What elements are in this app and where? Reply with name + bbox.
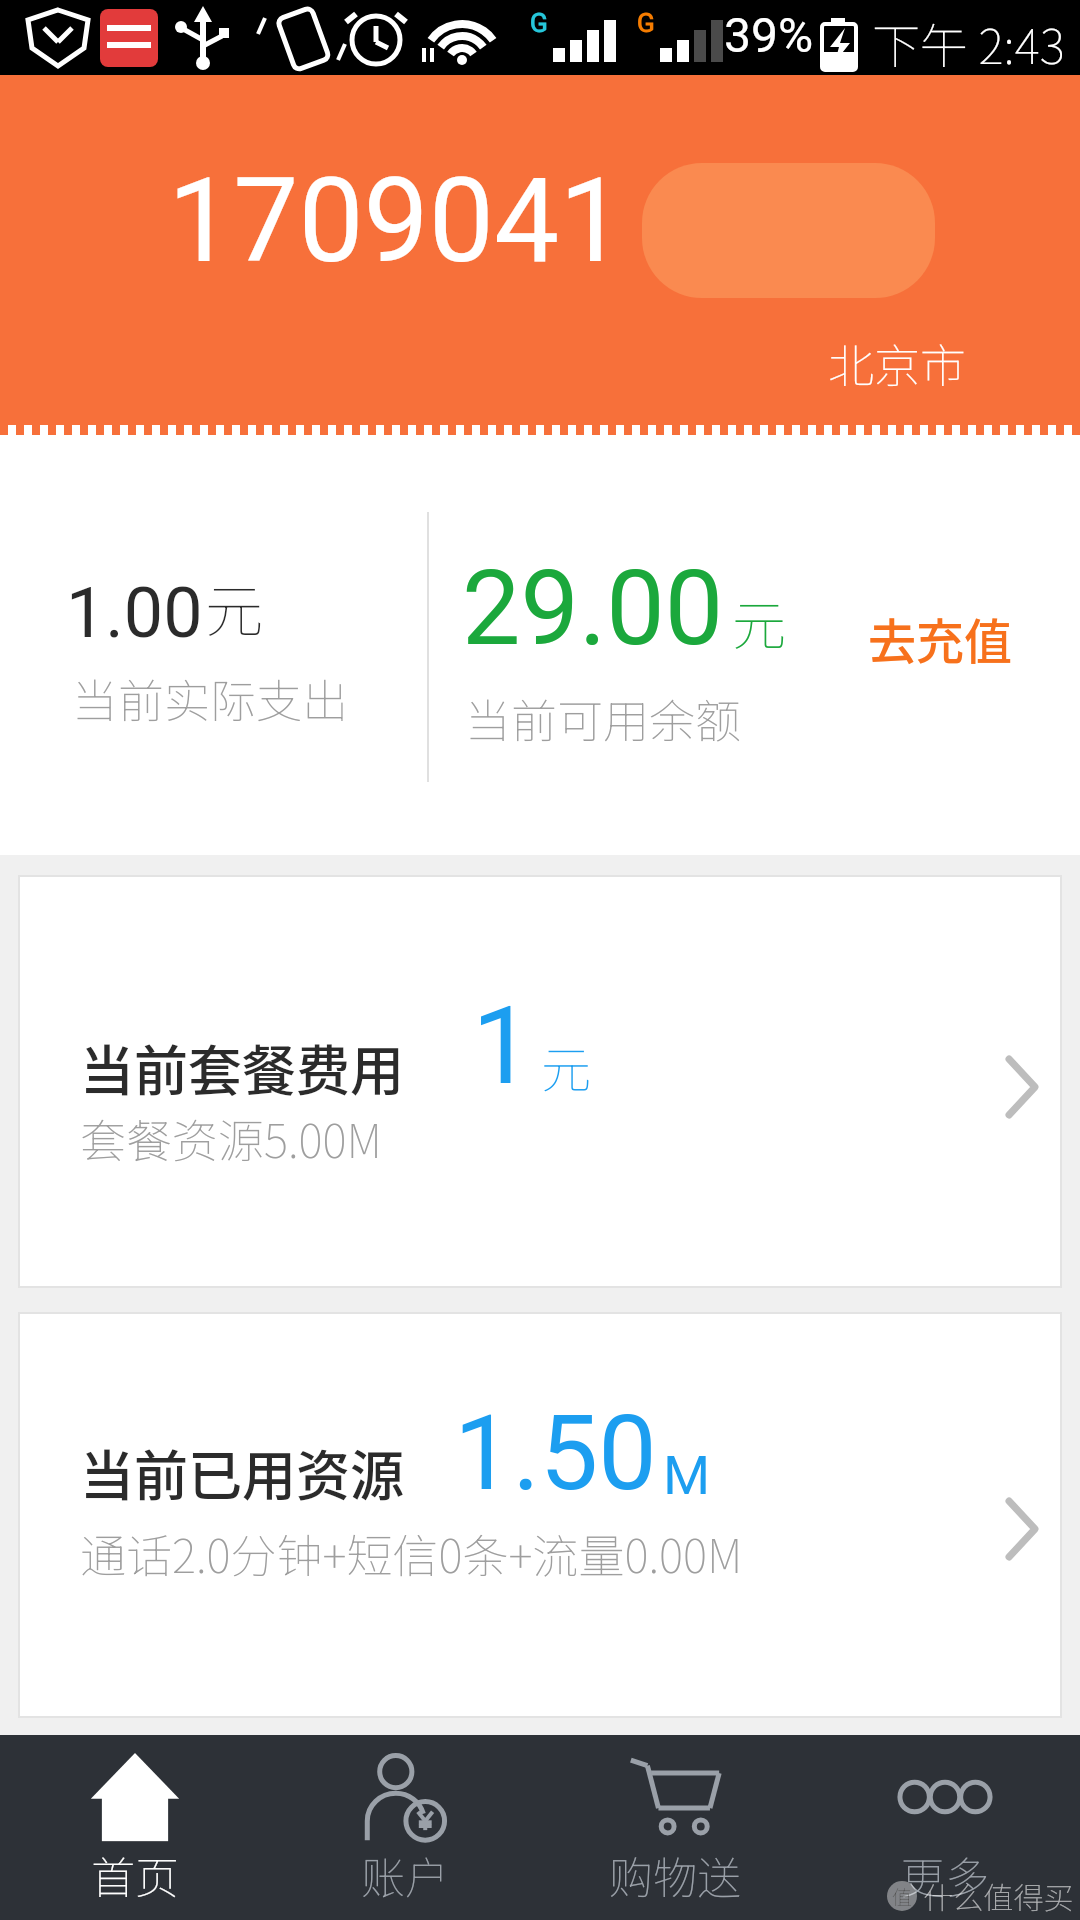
staticText: G bbox=[530, 8, 548, 38]
staticText: 当前已用资源 bbox=[80, 1433, 404, 1511]
staticText: 39% bbox=[724, 7, 814, 63]
button[interactable]: 购物送 bbox=[540, 1735, 810, 1920]
staticText: M bbox=[663, 1444, 711, 1507]
staticText: 当前可用余额 bbox=[465, 685, 741, 752]
staticText: 元 bbox=[205, 565, 264, 649]
button[interactable]: 更多 bbox=[810, 1735, 1080, 1920]
staticText: 下午 2:43 bbox=[872, 8, 1065, 78]
staticText: 1.00 bbox=[66, 572, 203, 654]
staticText: 当前套餐费用 bbox=[80, 1028, 404, 1106]
button[interactable]: 当前套餐费用 bbox=[18, 875, 1062, 1288]
staticText: 什么值得买 bbox=[917, 1874, 1074, 1917]
staticText: 29.00 bbox=[462, 548, 724, 670]
button[interactable]: 当前已用资源 bbox=[18, 1312, 1062, 1718]
staticText: 去充值 bbox=[868, 603, 1013, 673]
staticText: 购物送 bbox=[609, 1843, 741, 1907]
staticText: 当前实际支出 bbox=[72, 665, 348, 732]
staticText: 1709041 bbox=[168, 153, 625, 289]
staticText: 元 bbox=[541, 1030, 591, 1102]
staticText: 账户 bbox=[361, 1843, 449, 1907]
button[interactable]: 账户 bbox=[270, 1735, 540, 1920]
button[interactable]: 首页 bbox=[0, 1735, 270, 1920]
staticText: 更多 bbox=[901, 1843, 989, 1907]
staticText: 元 bbox=[732, 582, 786, 660]
staticText: 通话2.0分钟+短信0条+流量0.00M bbox=[80, 1520, 743, 1587]
staticText: 值 bbox=[892, 1882, 912, 1911]
staticText: 1 bbox=[472, 983, 533, 1110]
staticText: G bbox=[637, 8, 655, 38]
button[interactable]: 去充值 bbox=[868, 603, 1048, 673]
staticText: 北京市 bbox=[828, 330, 966, 397]
staticText: 首页 bbox=[91, 1843, 179, 1907]
staticText: 套餐资源5.00M bbox=[80, 1105, 382, 1172]
staticText: 1.50 bbox=[454, 1393, 657, 1515]
